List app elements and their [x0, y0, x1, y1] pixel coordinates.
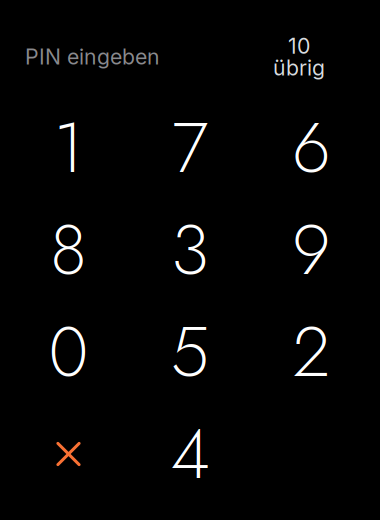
- button[interactable]: 5: [129, 301, 251, 403]
- staticText: 5: [170, 302, 209, 402]
- button[interactable]: 3: [129, 199, 251, 301]
- button[interactable]: 8: [8, 199, 129, 301]
- staticText: 4: [170, 404, 209, 504]
- staticText: 10: [288, 33, 310, 59]
- staticText: PIN eingeben: [25, 44, 160, 70]
- button[interactable]: 4: [129, 403, 251, 505]
- staticText: übrig: [273, 55, 325, 81]
- button[interactable]: 1: [8, 97, 129, 199]
- button[interactable]: 7: [129, 97, 251, 199]
- staticText: 6: [292, 98, 331, 198]
- staticText: 1: [53, 98, 83, 198]
- button[interactable]: Löschen: [8, 403, 129, 505]
- button[interactable]: 2: [251, 301, 372, 403]
- staticText: 8: [50, 200, 87, 300]
- button[interactable]: 9: [251, 199, 372, 301]
- button[interactable]: 6: [251, 97, 372, 199]
- staticText: 0: [48, 302, 88, 402]
- staticText: 7: [172, 98, 208, 198]
- staticText: 9: [292, 200, 331, 300]
- staticText: 3: [171, 200, 209, 300]
- staticText: 2: [292, 302, 330, 402]
- button[interactable]: 0: [8, 301, 129, 403]
